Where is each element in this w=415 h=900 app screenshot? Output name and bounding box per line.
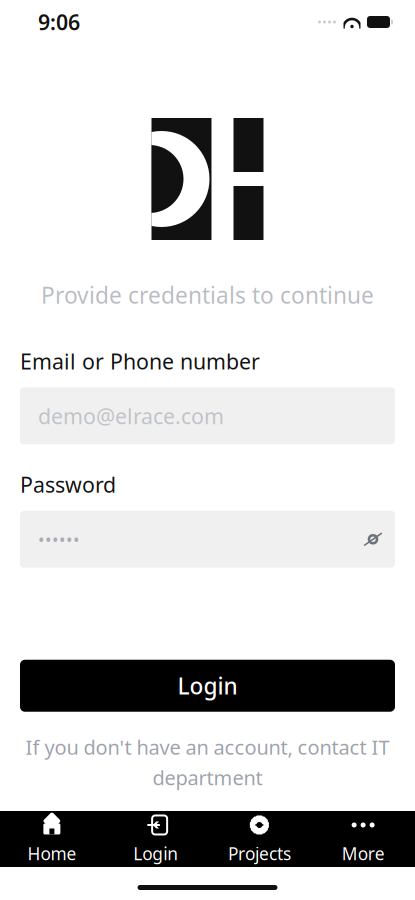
staticText: Email or Phone number — [20, 347, 260, 375]
staticText: Home — [27, 842, 76, 865]
staticText: If you don't have an account, contact IT — [25, 734, 389, 760]
staticText: department — [152, 764, 262, 791]
button[interactable]: Show password — [351, 517, 395, 561]
staticText: More — [342, 842, 385, 865]
staticText: Login — [177, 671, 237, 701]
staticText: Projects — [228, 842, 291, 865]
staticText: demo@elrace.com — [38, 402, 224, 430]
staticText: Provide credentials to continue — [41, 280, 374, 310]
button[interactable]: More — [311, 811, 415, 867]
button[interactable]: Login — [20, 660, 395, 712]
button[interactable]: Home — [0, 811, 104, 867]
button[interactable]: Projects — [207, 811, 311, 867]
staticText: Login — [133, 842, 178, 865]
staticText: •••••• — [38, 528, 80, 551]
staticText: Password — [20, 470, 116, 499]
staticText: 9:06 — [38, 8, 80, 36]
button[interactable]: Login — [104, 811, 208, 867]
